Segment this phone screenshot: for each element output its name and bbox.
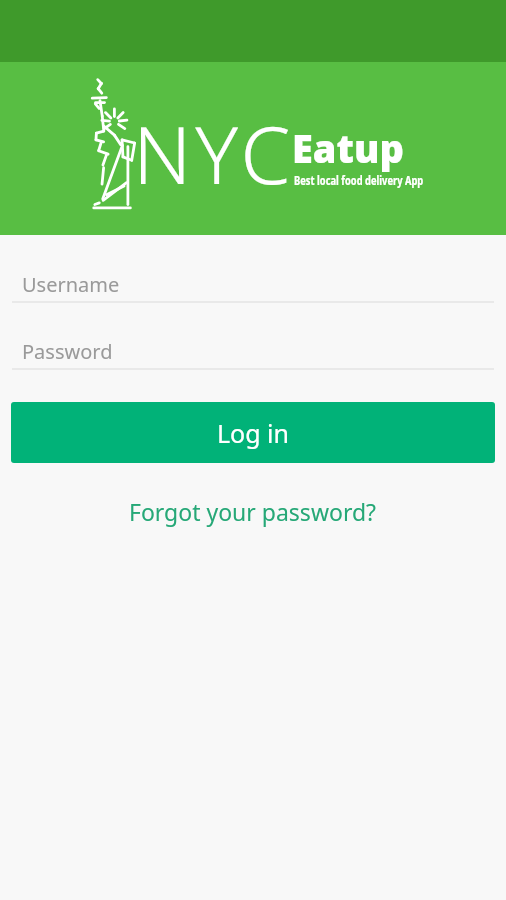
staticText: Forgot your password? <box>129 496 377 527</box>
button[interactable]: Username <box>12 267 494 303</box>
staticText: Eatup <box>292 122 404 174</box>
staticText: Password <box>22 338 113 365</box>
staticText: Best local food delivery App <box>294 171 424 189</box>
button[interactable]: Log in <box>11 402 495 463</box>
button[interactable]: Password <box>12 334 494 370</box>
staticText: Username <box>22 271 120 298</box>
button[interactable]: Forgot your password? <box>117 488 389 535</box>
staticText: Log in <box>217 416 290 450</box>
staticText: NYC <box>133 98 295 207</box>
